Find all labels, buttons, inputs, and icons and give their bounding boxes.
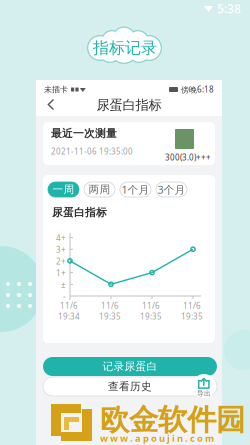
staticText: 11/6 — [142, 300, 160, 311]
staticText: w w w . a p o u j i n . c o m — [100, 432, 214, 444]
staticText: 1个月 — [121, 182, 149, 197]
staticText: 欧金软件园 — [100, 402, 245, 438]
staticText: 指标记录 — [93, 38, 157, 58]
staticText: 11/6 — [183, 300, 201, 311]
staticText: 一周 — [52, 183, 74, 196]
staticText: 11/6 — [60, 300, 78, 311]
staticText: 2+ — [56, 256, 66, 267]
staticText: 19:35 — [181, 311, 203, 322]
button[interactable]: 3个月 — [156, 182, 187, 197]
staticText: 4+ — [56, 233, 66, 243]
staticText: 300(3.0)+++ — [165, 152, 211, 163]
staticText: 11/6 — [101, 300, 119, 311]
staticText: 19:35 — [99, 311, 121, 322]
button[interactable]: 两周 — [84, 182, 115, 197]
staticText: 记录尿蛋白 — [102, 360, 157, 373]
button[interactable]: 查看历史 — [43, 377, 217, 396]
staticText: 2021-11-06 19:35:00 — [51, 146, 133, 157]
staticText: 5:38 — [217, 0, 241, 16]
staticText: 最近一次测量 — [51, 127, 117, 140]
staticText: 尿蛋白指标 — [96, 97, 161, 113]
button[interactable]: 一周 — [48, 182, 79, 197]
staticText: 3个月 — [157, 182, 185, 197]
staticText: 1+ — [56, 268, 66, 278]
staticText: 未插卡 — [44, 85, 68, 94]
staticText: ± — [61, 279, 66, 290]
staticText: 导出 — [197, 389, 211, 398]
button[interactable]: 记录尿蛋白 — [43, 357, 217, 376]
staticText: 查看历史 — [108, 380, 152, 393]
button[interactable]: 1个月 — [120, 182, 151, 197]
staticText: 19:35 — [140, 311, 162, 322]
staticText: 3+ — [56, 244, 66, 255]
staticText: 傍晚6:18 — [181, 84, 214, 95]
staticText: 19:34 — [58, 311, 80, 322]
staticText: 尿蛋白指标 — [52, 206, 107, 219]
button[interactable]: Back — [42, 95, 60, 115]
staticText: - — [63, 291, 66, 302]
button[interactable]: Share — [192, 374, 216, 398]
staticText: 两周 — [88, 183, 110, 196]
